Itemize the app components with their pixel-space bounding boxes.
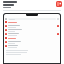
button[interactable]	[4, 40, 60, 44]
button[interactable]: Open item	[4, 32, 60, 36]
button[interactable]: Menu	[5, 18, 7, 20]
button[interactable]	[4, 44, 60, 48]
button[interactable]: App logo	[56, 1, 62, 7]
button[interactable]	[8, 18, 56, 20]
button[interactable]: Open item	[57, 33, 59, 35]
button[interactable]: Open item	[57, 25, 59, 27]
button[interactable]	[4, 28, 60, 32]
button[interactable]: Open item	[4, 24, 60, 28]
